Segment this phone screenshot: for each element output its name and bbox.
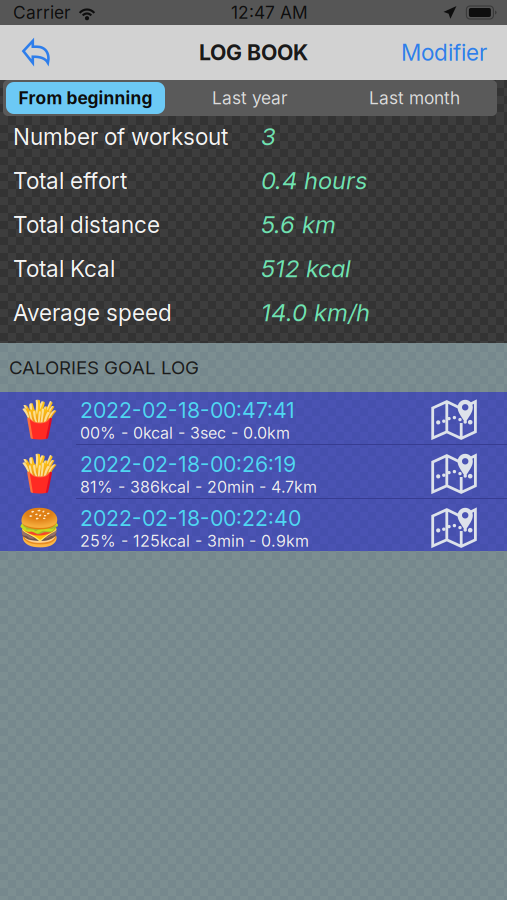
staticText: Modifier bbox=[401, 39, 487, 66]
staticText: Last year bbox=[212, 87, 288, 108]
staticText: 512 kcal bbox=[261, 254, 351, 283]
staticText: Last month bbox=[369, 87, 460, 108]
staticText: 0.4 hours bbox=[261, 166, 367, 195]
staticText: 00% - 0kcal - 3sec - 0.0km bbox=[80, 423, 290, 443]
button[interactable]: Last month bbox=[332, 80, 497, 116]
staticText: 🍟 bbox=[16, 399, 61, 441]
button[interactable]: Back bbox=[0, 26, 72, 78]
staticText: Total effort bbox=[13, 167, 127, 194]
staticText: 3 bbox=[261, 122, 276, 151]
staticText: Number of worksout bbox=[13, 123, 228, 150]
staticText: CALORIES GOAL LOG bbox=[9, 356, 199, 379]
button[interactable]: 🍟 bbox=[0, 445, 507, 498]
staticText: 14.0 km/h bbox=[261, 298, 370, 327]
staticText: Total distance bbox=[13, 211, 160, 238]
button[interactable]: From beginning bbox=[3, 80, 168, 116]
button[interactable]: 🍟 bbox=[0, 391, 507, 444]
staticText: Average speed bbox=[13, 299, 172, 326]
button[interactable]: Modifier bbox=[387, 26, 507, 78]
staticText: From beginning bbox=[18, 87, 152, 108]
staticText: 2022-02-18-00:26:19 bbox=[80, 451, 296, 477]
staticText: LOG BOOK bbox=[199, 40, 308, 65]
staticText: 🍔 bbox=[16, 507, 61, 549]
staticText: Carrier bbox=[13, 2, 71, 23]
staticText: 2022-02-18-00:22:40 bbox=[80, 505, 301, 531]
staticText: 5.6 km bbox=[261, 210, 336, 239]
staticText: 12:47 AM bbox=[231, 2, 308, 23]
staticText: 25% - 125kcal - 3min - 0.9km bbox=[80, 531, 309, 551]
button[interactable]: 🍔 bbox=[0, 499, 507, 552]
staticText: 2022-02-18-00:47:41 bbox=[80, 397, 295, 423]
staticText: 81% - 386kcal - 20min - 4.7km bbox=[80, 477, 317, 497]
staticText: 🍟 bbox=[16, 453, 61, 495]
button[interactable]: Last year bbox=[168, 80, 332, 116]
staticText: Total Kcal bbox=[13, 255, 115, 282]
